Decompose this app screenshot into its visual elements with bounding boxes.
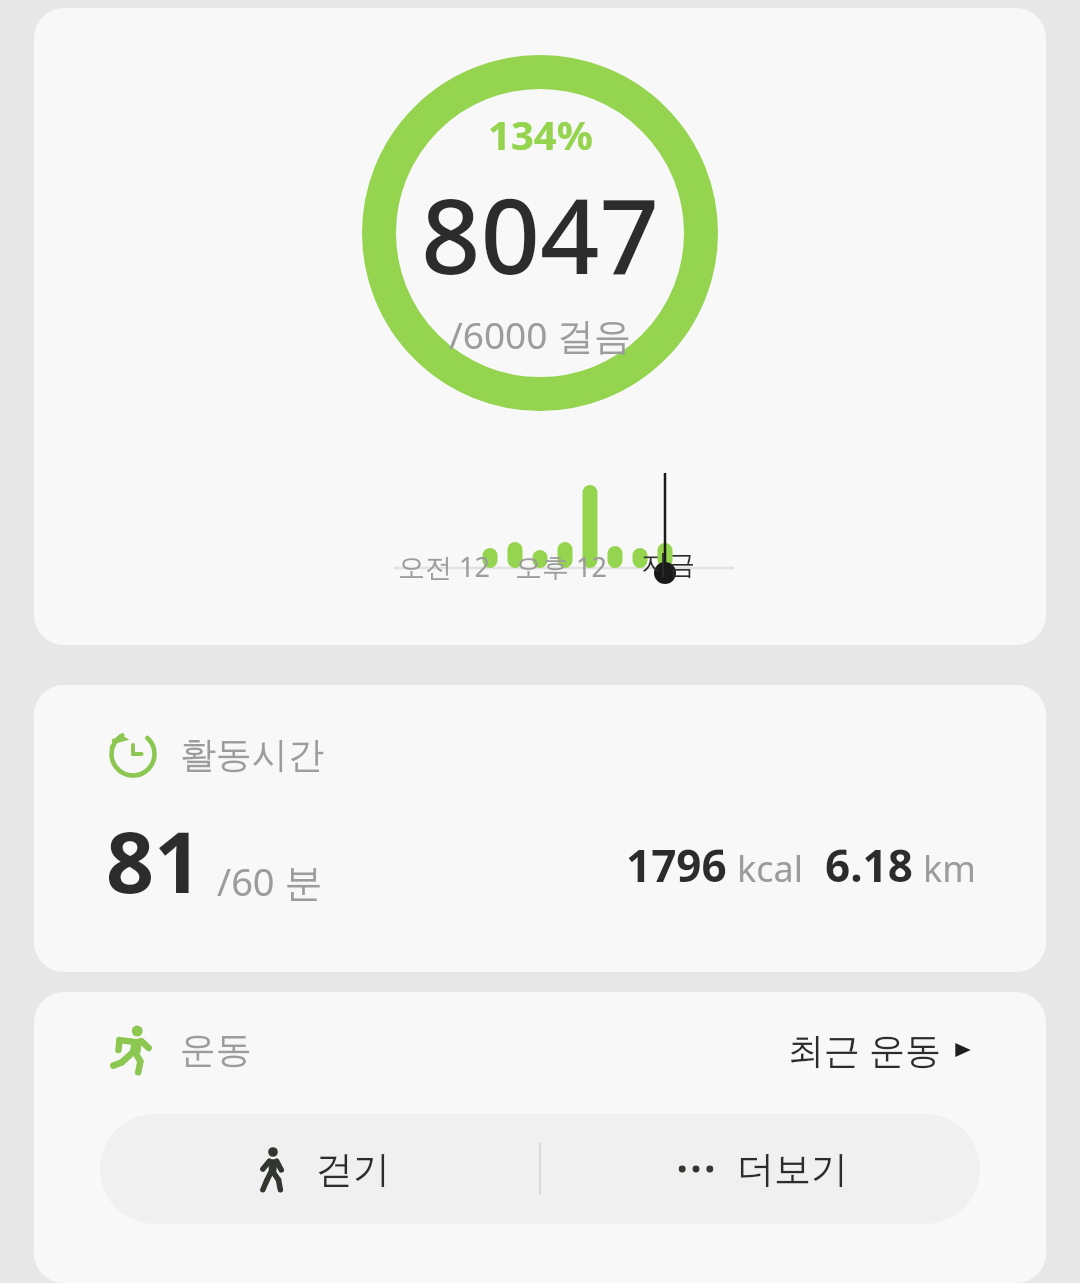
- staticText: 6.18: [825, 835, 913, 895]
- staticText: 8047: [421, 163, 659, 305]
- button[interactable]: 걷기: [100, 1114, 539, 1224]
- staticText: 1796: [626, 835, 727, 895]
- staticText: 81: [106, 803, 203, 917]
- staticText: 최근 운동: [788, 1025, 942, 1074]
- staticText: 134%: [488, 107, 593, 161]
- staticText: km: [923, 844, 976, 893]
- staticText: 운동: [180, 1027, 252, 1072]
- staticText: kcal: [737, 844, 803, 893]
- staticText: /60 분: [217, 855, 323, 907]
- button[interactable]: 더보기: [541, 1114, 980, 1224]
- staticText: 걷기: [316, 1146, 390, 1193]
- staticText: 오전 12: [398, 548, 490, 585]
- button[interactable]: 활동시간: [34, 685, 1046, 972]
- staticText: 더보기: [737, 1146, 848, 1193]
- staticText: /6000 걸음: [449, 309, 632, 360]
- staticText: 오후 12: [515, 548, 607, 585]
- staticText: 활동시간: [180, 732, 324, 777]
- button[interactable]: 134%: [34, 8, 1046, 645]
- staticText: 지금: [641, 548, 695, 582]
- button[interactable]: 최근 운동: [784, 1021, 978, 1078]
